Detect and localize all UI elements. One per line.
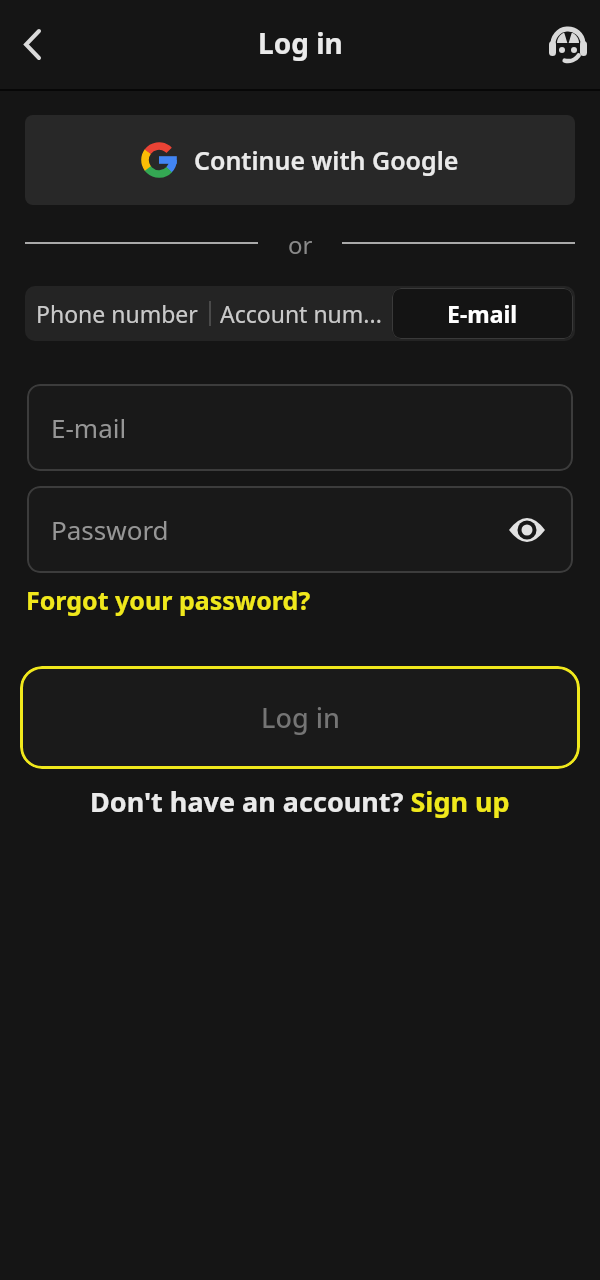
staticText: Password (51, 512, 169, 547)
button[interactable]: Don't have an account? Sign up (0, 783, 600, 819)
button[interactable] (544, 21, 592, 69)
staticText: E-mail (447, 298, 518, 329)
button[interactable]: E-mail (392, 288, 573, 339)
staticText: Phone number (36, 298, 198, 329)
staticText: Don't have an account? Sign up (90, 783, 510, 819)
staticText: Continue with Google (194, 143, 459, 177)
staticText: Log in (261, 699, 340, 736)
button[interactable]: Phone number (25, 286, 208, 341)
button[interactable]: Forgot your password? (26, 583, 311, 617)
staticText: Forgot your password? (26, 583, 311, 617)
staticText: E-mail (51, 410, 127, 445)
button[interactable]: Continue with Google (25, 115, 575, 205)
button[interactable] (507, 510, 547, 550)
staticText: Log in (258, 24, 343, 62)
button[interactable]: Password (27, 486, 573, 573)
staticText: or (288, 228, 313, 258)
button[interactable]: Account num... (211, 286, 391, 341)
button[interactable]: E-mail (27, 384, 573, 471)
staticText: Account num... (220, 298, 382, 329)
button[interactable]: Log in (20, 666, 580, 769)
button[interactable] (8, 21, 56, 69)
